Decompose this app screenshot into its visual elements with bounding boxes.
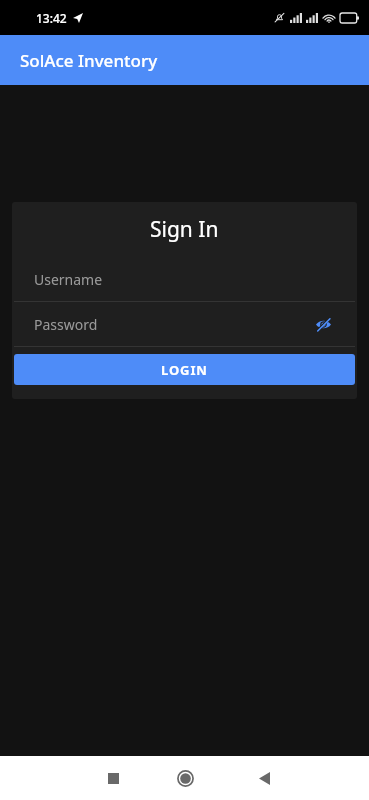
- button[interactable]: Show password: [311, 312, 335, 336]
- button[interactable]: Home: [168, 761, 202, 795]
- staticText: Sign In: [150, 215, 219, 244]
- staticText: LOGIN: [161, 361, 208, 379]
- staticText: 13:42: [36, 10, 67, 26]
- button[interactable]: Back: [249, 763, 279, 793]
- button[interactable]: Recent apps: [98, 763, 128, 793]
- staticText: Password: [34, 315, 98, 334]
- staticText: Username: [34, 270, 103, 289]
- button[interactable]: Password: [12, 302, 357, 347]
- button[interactable]: LOGIN: [14, 354, 355, 385]
- staticText: SolAce Inventory: [20, 49, 158, 72]
- button[interactable]: Username: [12, 257, 357, 302]
